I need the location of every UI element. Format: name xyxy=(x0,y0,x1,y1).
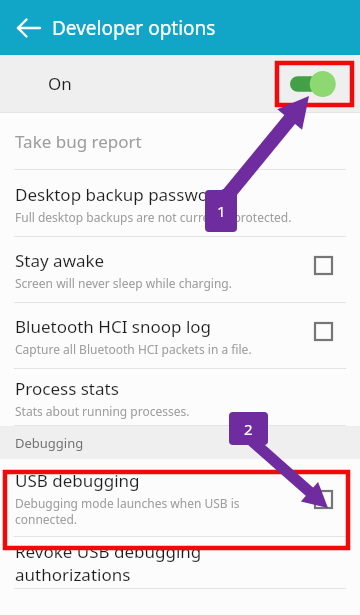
staticText: Developer options xyxy=(52,15,216,41)
button[interactable]: On xyxy=(0,55,360,112)
button[interactable]: Take bug report xyxy=(0,113,360,170)
staticText: Stay awake xyxy=(15,249,105,272)
button[interactable]: Stay awake xyxy=(0,237,360,303)
button[interactable]: Process stats xyxy=(0,369,360,426)
button[interactable]: Bluetooth HCI snoop log xyxy=(0,303,360,369)
button[interactable]: Revoke USB debugging authorizations xyxy=(0,537,360,589)
staticText: USB debugging xyxy=(15,469,140,492)
staticText: Debugging xyxy=(15,434,84,452)
staticText: Bluetooth HCI snoop log xyxy=(15,315,212,338)
staticText: Take bug report xyxy=(15,130,142,153)
button[interactable]: Bluetooth HCI snoop log checkbox xyxy=(314,322,333,341)
staticText: Desktop backup password xyxy=(15,183,226,206)
button[interactable]: Back xyxy=(16,15,42,41)
staticText: 2 xyxy=(244,419,253,439)
button[interactable]: Desktop backup password xyxy=(0,170,360,237)
button[interactable]: Developer options toggle xyxy=(286,71,340,97)
staticText: Process stats xyxy=(15,377,119,400)
button[interactable]: USB debugging checkbox xyxy=(314,490,333,509)
button[interactable]: Stay awake checkbox xyxy=(314,256,333,275)
staticText: connected. xyxy=(15,511,78,527)
staticText: Stats about running processes. xyxy=(15,403,190,419)
staticText: Screen will never sleep while charging. xyxy=(15,275,232,291)
staticText: On xyxy=(48,72,72,95)
staticText: Full desktop backups are not currently p… xyxy=(15,209,292,225)
staticText: Revoke USB debugging authorizations xyxy=(15,540,300,586)
button[interactable]: USB debugging xyxy=(0,459,360,537)
staticText: Capture all Bluetooth HCI packets in a f… xyxy=(15,341,252,357)
staticText: 1 xyxy=(217,201,226,221)
staticText: Debugging mode launches when USB is xyxy=(15,495,240,511)
